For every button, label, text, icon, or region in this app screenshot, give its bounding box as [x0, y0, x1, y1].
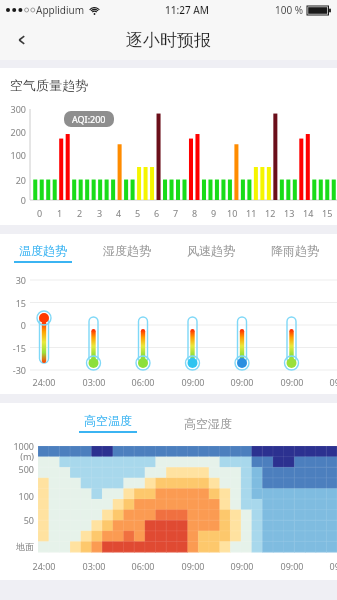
staticText: 12	[265, 207, 276, 219]
staticText: 1	[57, 207, 63, 219]
staticText: 7	[173, 207, 179, 219]
staticText: -15	[0, 342, 26, 354]
staticText: 300	[0, 103, 26, 115]
staticText: 06:00	[126, 376, 160, 388]
staticText: 03:00	[77, 560, 111, 572]
staticText: 13	[284, 207, 295, 219]
staticText: 03:00	[77, 376, 111, 388]
staticText: 14	[303, 207, 314, 219]
staticText: 11	[246, 207, 257, 219]
button[interactable]: 湿度趋势	[85, 238, 169, 268]
staticText: 湿度趋势	[103, 243, 151, 258]
staticText: 2	[77, 207, 83, 219]
staticText: 15	[0, 297, 26, 309]
staticText: 100 %	[275, 3, 304, 17]
staticText: 24:00	[27, 560, 61, 572]
staticText: 高空湿度	[184, 416, 232, 431]
staticText: 风速趋势	[187, 243, 235, 258]
staticText: 09:00	[324, 376, 337, 388]
staticText: 11:27 AM	[165, 3, 209, 17]
staticText: AQI:200	[72, 113, 106, 125]
staticText: 100	[0, 149, 26, 161]
staticText: 09:00	[324, 560, 337, 572]
staticText: 10	[227, 207, 238, 219]
staticText: 空气质量趋势	[10, 77, 88, 93]
staticText: 降雨趋势	[271, 243, 319, 258]
staticText: 0	[37, 207, 43, 219]
button[interactable]: 温度趋势	[0, 238, 85, 268]
staticText: 3	[97, 207, 103, 219]
staticText: Applidium	[36, 3, 85, 17]
button[interactable]: 降雨趋势	[253, 238, 337, 268]
staticText: 09:00	[176, 376, 210, 388]
staticText: 8	[192, 207, 198, 219]
staticText: 4	[116, 207, 122, 219]
staticText: 30	[0, 274, 26, 286]
staticText: 0	[0, 319, 26, 331]
button[interactable]: 高空湿度	[162, 410, 254, 436]
staticText: 24:00	[27, 376, 61, 388]
staticText: 6	[154, 207, 160, 219]
staticText: 09:00	[225, 560, 259, 572]
staticText: 50	[0, 514, 34, 526]
staticText: 09:00	[225, 376, 259, 388]
staticText: 温度趋势	[19, 243, 67, 258]
button[interactable]: 风速趋势	[169, 238, 253, 268]
staticText: 逐小时预报	[126, 30, 211, 51]
button[interactable]: 高空温度	[62, 410, 154, 436]
staticText: 09:00	[275, 376, 309, 388]
staticText: 500	[0, 463, 34, 475]
staticText: -30	[0, 364, 26, 376]
staticText: 09:00	[176, 560, 210, 572]
staticText: 9	[211, 207, 217, 219]
staticText: 1000 (m)	[0, 440, 34, 462]
staticText: 100	[0, 490, 34, 502]
staticText: 200	[0, 126, 26, 138]
staticText: 5	[135, 207, 141, 219]
staticText: 06:00	[126, 560, 160, 572]
staticText: 15	[322, 207, 333, 219]
button[interactable]: Back	[0, 20, 44, 60]
staticText: 0	[0, 194, 26, 206]
staticText: 高空温度	[84, 413, 132, 428]
staticText: 20	[0, 174, 26, 186]
staticText: 09:00	[275, 560, 309, 572]
staticText: 地面	[0, 541, 34, 552]
